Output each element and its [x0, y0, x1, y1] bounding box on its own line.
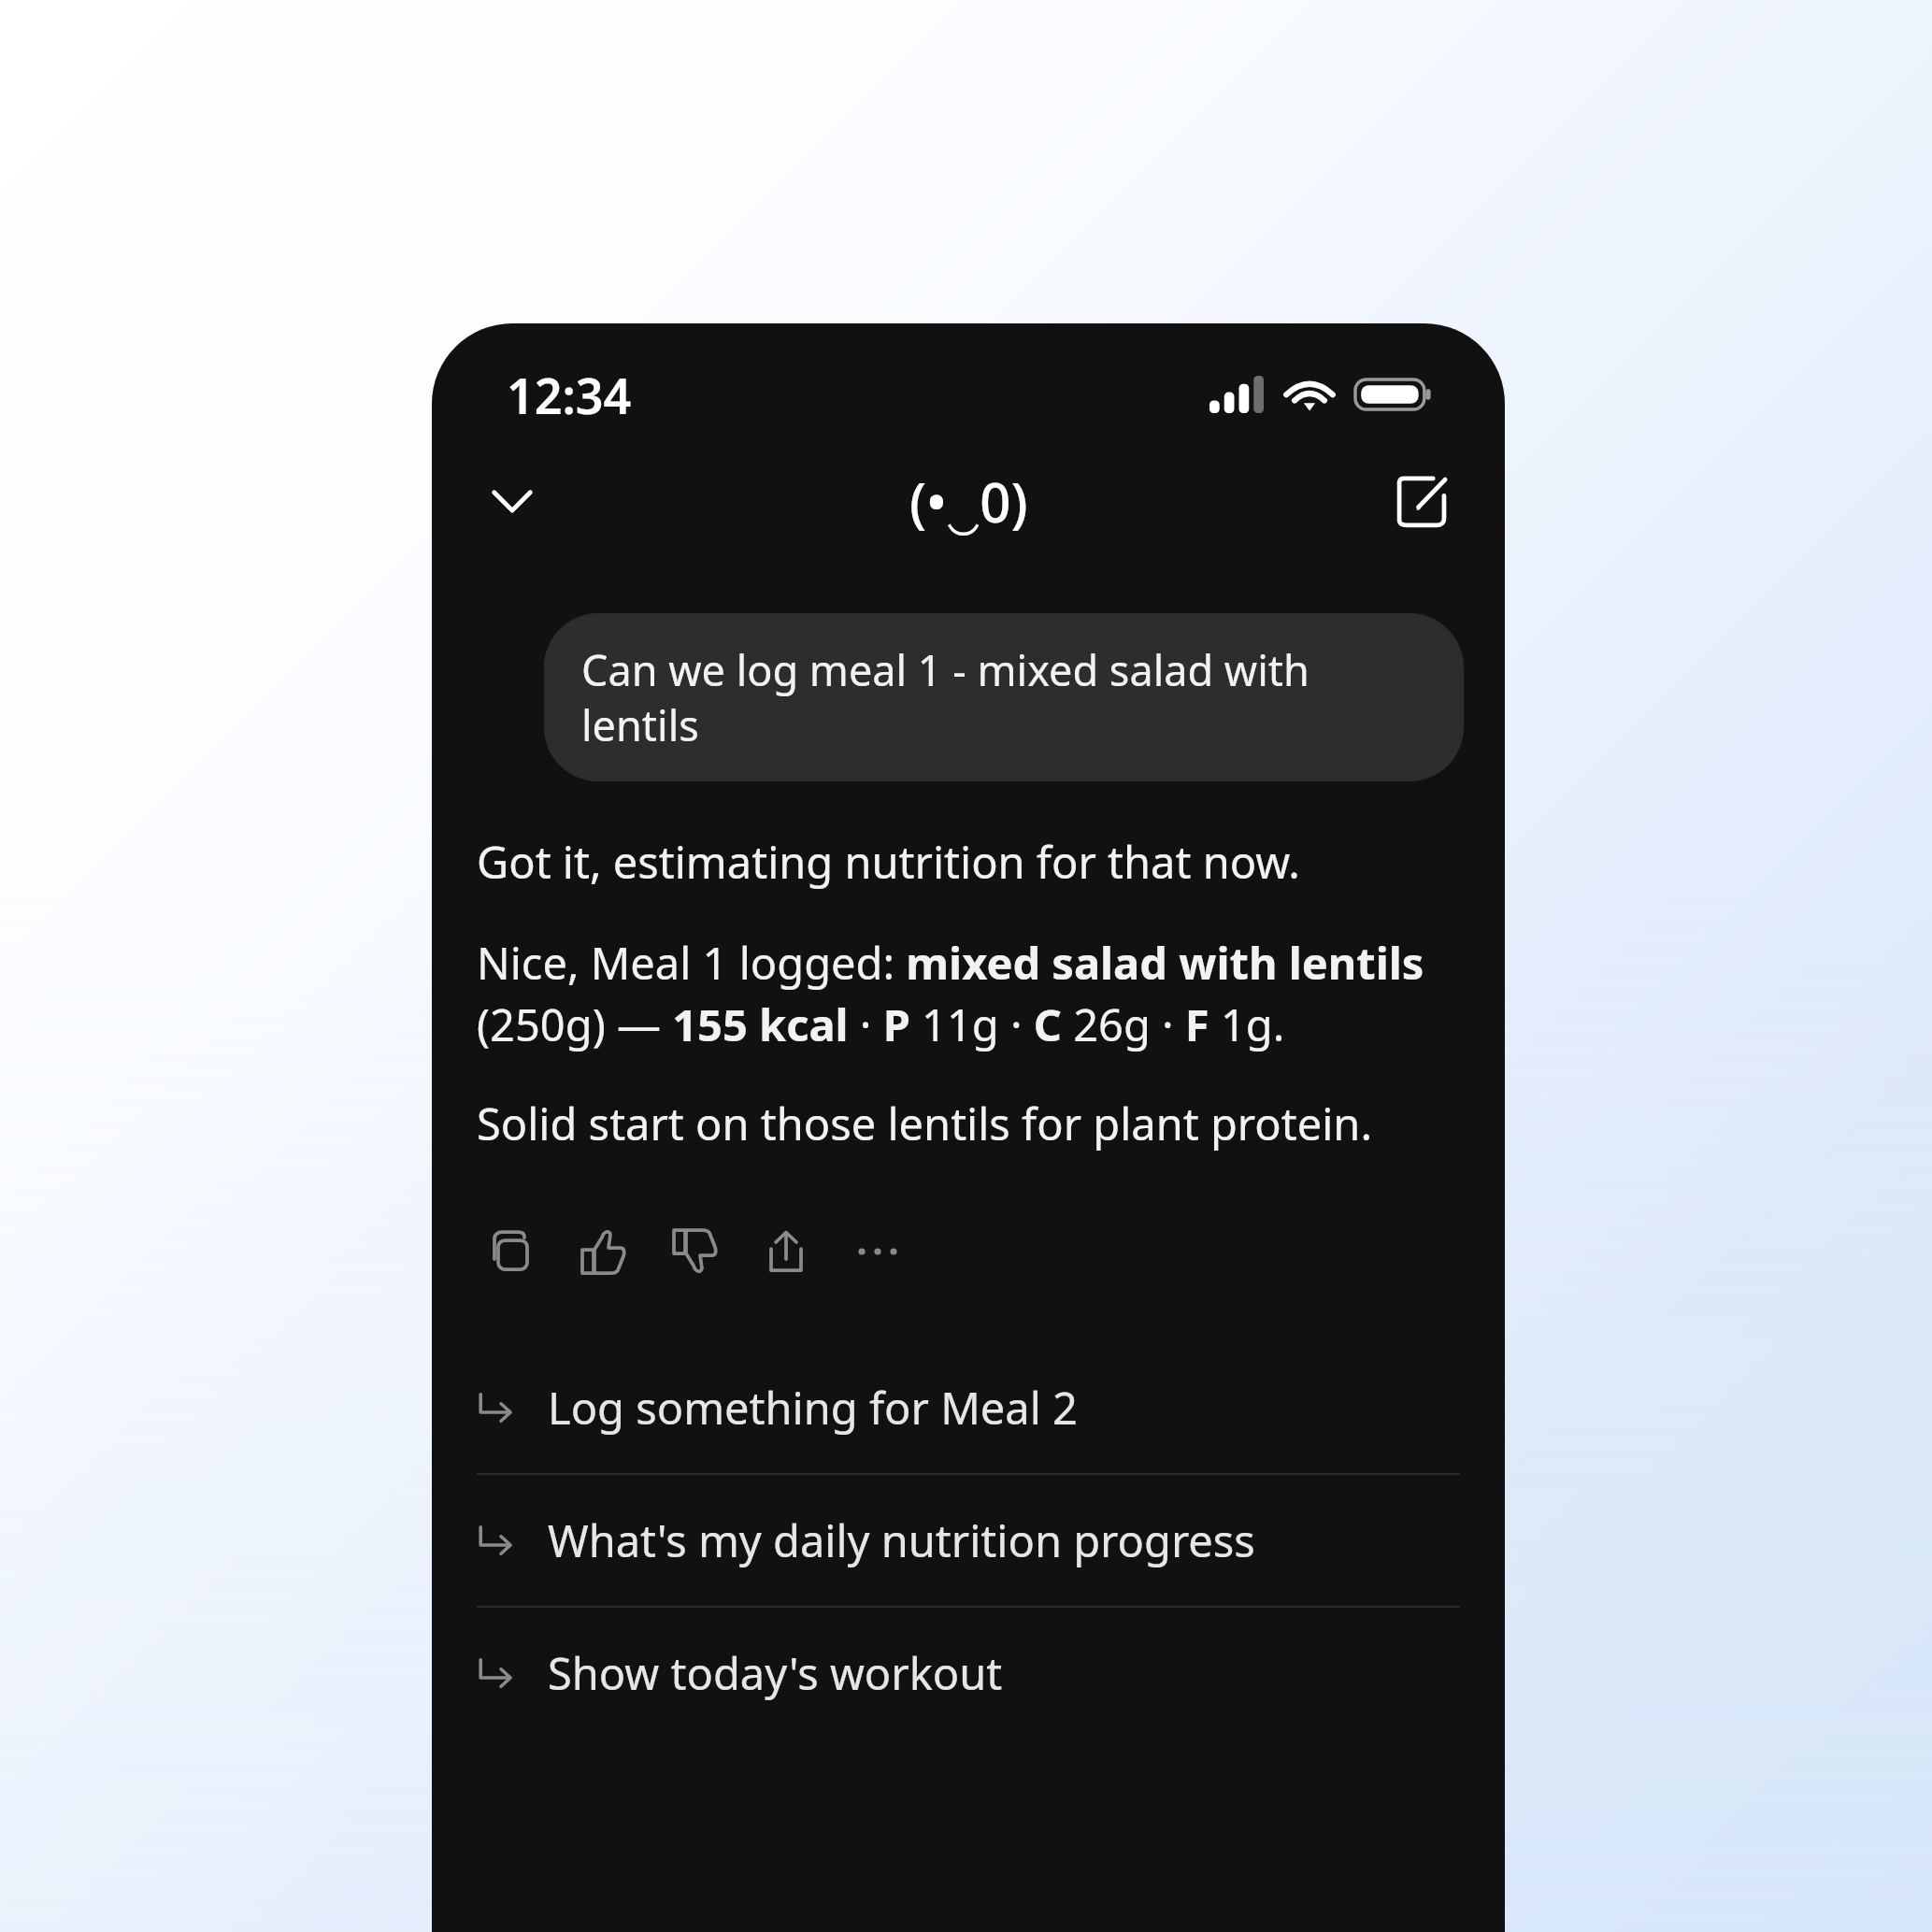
staticText: Show today's workout [548, 1643, 1003, 1703]
staticText: Nice, Meal 1 logged: mixed salad with le… [477, 933, 1460, 1054]
staticText: What's my daily nutrition progress [548, 1510, 1255, 1570]
button[interactable]: Log something for Meal 2 [477, 1342, 1460, 1473]
button[interactable]: Share [740, 1206, 832, 1297]
button[interactable]: What's my daily nutrition progress [477, 1475, 1460, 1606]
button[interactable]: Show today's workout [477, 1608, 1460, 1739]
button[interactable]: Collapse [467, 456, 557, 546]
staticText: (•‿0) [909, 465, 1028, 538]
staticText: Log something for Meal 2 [548, 1378, 1078, 1438]
staticText: Can we log meal 1 - mixed salad with len… [581, 641, 1426, 753]
staticText: Solid start on those lentils for plant p… [477, 1094, 1372, 1153]
button[interactable]: Copy [465, 1206, 557, 1297]
button[interactable]: Can we log meal 1 - mixed salad with len… [544, 613, 1464, 781]
button[interactable]: More options [832, 1206, 923, 1297]
button[interactable]: Good response [557, 1206, 649, 1297]
button[interactable]: Bad response [649, 1206, 740, 1297]
button[interactable]: New chat [1378, 456, 1467, 546]
staticText: Got it, estimating nutrition for that no… [477, 832, 1300, 892]
staticText: 12:34 [507, 362, 632, 428]
button[interactable]: (•‿0) [893, 459, 1045, 544]
